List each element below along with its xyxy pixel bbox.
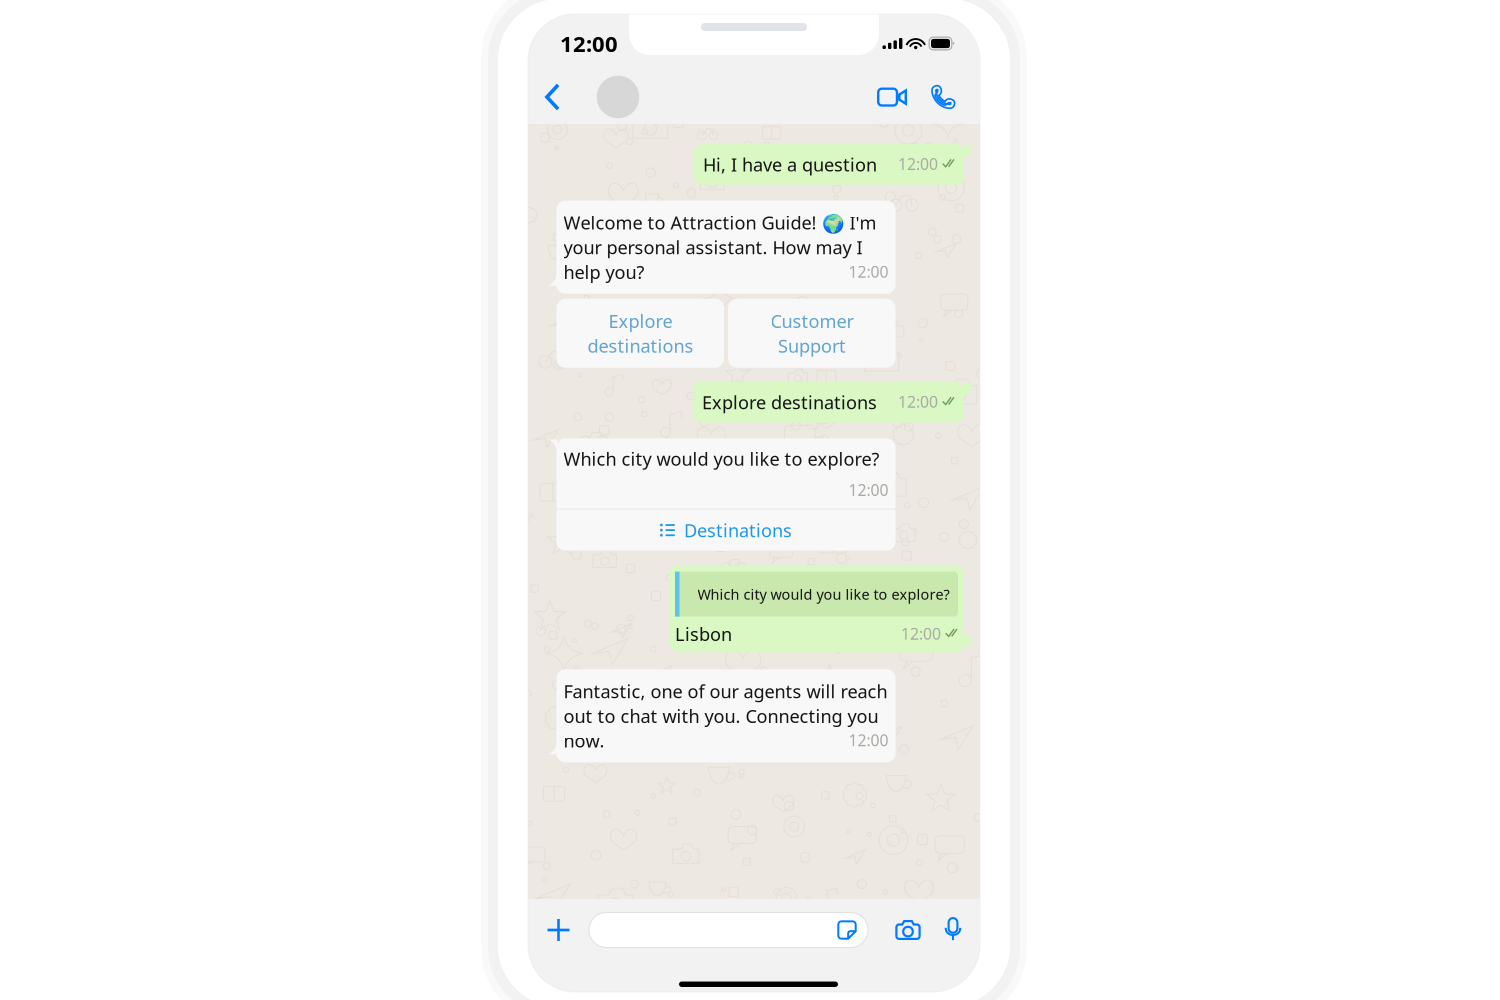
staticText: 12:00 (901, 623, 941, 644)
staticText: Destinations (684, 518, 792, 542)
button[interactable]: Video call (866, 70, 918, 124)
staticText: help you? (563, 260, 644, 284)
staticText: Explore destinations (702, 390, 877, 414)
button[interactable]: Customer Support (728, 299, 895, 368)
button[interactable]: Explore destinations (556, 299, 724, 368)
staticText: 12:00 (848, 729, 888, 751)
button[interactable]: Stickers (837, 913, 868, 947)
staticText: Fantastic, one of our agents will reach … (563, 679, 887, 728)
button[interactable]: Voice message (931, 907, 975, 953)
button[interactable]: Camera (885, 907, 931, 953)
staticText: Hi, I have a question (703, 152, 877, 177)
button[interactable]: Back (528, 70, 576, 124)
button[interactable]: Voice call (918, 70, 968, 124)
button[interactable]: Contact profile (576, 70, 660, 124)
staticText: now. (563, 728, 604, 753)
staticText: 12:00 (898, 391, 938, 412)
staticText: Welcome to Attraction Guide! 🌍 I'm your … (563, 210, 876, 260)
staticText: Customer Support (770, 309, 853, 358)
staticText: 12:00 (560, 28, 618, 58)
staticText: 12:00 (898, 153, 938, 175)
button[interactable]: Destinations (556, 510, 895, 551)
staticText: Which city would you like to explore? (697, 584, 949, 604)
button[interactable]: Attach (528, 907, 589, 953)
staticText: Lisbon (675, 622, 732, 646)
staticText: Which city would you like to explore? (563, 446, 879, 471)
staticText: 12:00 (848, 261, 888, 282)
staticText: Explore destinations (587, 309, 693, 358)
staticText: 12:00 (848, 479, 888, 501)
